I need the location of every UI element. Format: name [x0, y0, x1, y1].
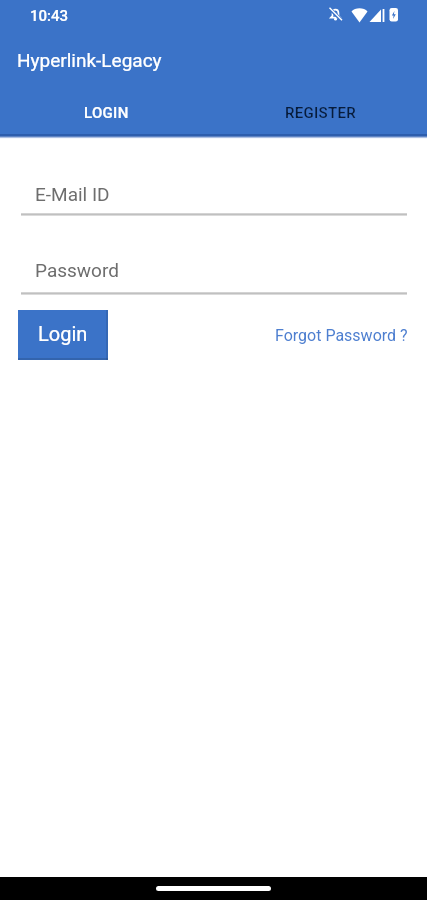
staticText: Password — [35, 259, 119, 281]
button[interactable]: Password — [0, 259, 427, 295]
staticText: Hyperlink-Legacy — [17, 49, 162, 71]
staticText: E-Mail ID — [35, 183, 110, 205]
button[interactable]: LOGIN — [0, 87, 213, 134]
button[interactable]: E-Mail ID — [0, 183, 427, 216]
button[interactable]: Login — [18, 310, 108, 360]
other: Notifications off, Wi-Fi, mobile signal,… — [0, 0, 427, 32]
button[interactable]: REGISTER — [213, 87, 427, 134]
staticText: Forgot Password ? — [275, 326, 408, 345]
staticText: REGISTER — [285, 104, 356, 122]
staticText: Login — [38, 322, 88, 345]
staticText: 10:43 — [30, 7, 69, 25]
button[interactable]: Forgot Password ? — [275, 310, 408, 360]
staticText: LOGIN — [84, 104, 129, 122]
